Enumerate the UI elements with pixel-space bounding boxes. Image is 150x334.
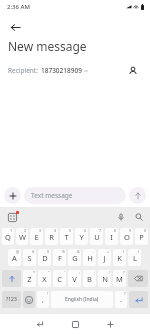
button[interactable]: Home: [64, 314, 86, 334]
staticText: 4: [54, 228, 57, 233]
button[interactable]: #: [23, 249, 36, 266]
staticText: Q: [5, 232, 11, 242]
staticText: ?123: [6, 296, 17, 303]
staticText: V: [72, 274, 77, 284]
staticText: Recipient:: [8, 66, 38, 75]
staticText: New message: [8, 38, 87, 54]
button[interactable]: Text message: [24, 187, 126, 204]
button[interactable]: ": [38, 270, 51, 287]
staticText: 8: [114, 228, 117, 233]
button[interactable]: ': [53, 270, 66, 287]
staticText: 7: [99, 228, 102, 233]
staticText: X: [42, 274, 47, 284]
button[interactable]: 7: [90, 228, 103, 245]
staticText: U: [94, 232, 100, 242]
button[interactable]: &: [68, 249, 81, 266]
staticText: F: [58, 253, 62, 263]
staticText: C: [57, 274, 62, 284]
staticText: H: [87, 253, 93, 263]
staticText: O: [124, 232, 130, 242]
staticText: $: [47, 249, 50, 254]
staticText: ': [64, 270, 65, 275]
button[interactable]: Attach: [4, 187, 21, 204]
staticText: K: [117, 253, 122, 263]
button[interactable]: +: [98, 249, 111, 266]
button[interactable]: Stickers: [5, 210, 19, 224]
button[interactable]: 1: [2, 228, 14, 245]
button[interactable]: Shift: [2, 270, 21, 287]
button[interactable]: Search: [132, 210, 145, 223]
staticText: T: [64, 232, 69, 242]
button[interactable]: 3: [30, 228, 43, 245]
button[interactable]: ): [128, 249, 141, 266]
staticText: 6: [84, 228, 87, 233]
button[interactable]: Enter: [129, 291, 148, 308]
staticText: .: [120, 295, 122, 305]
staticText: -: [93, 249, 95, 254]
staticText: English (India): [65, 296, 99, 303]
staticText: 2: [24, 228, 27, 233]
staticText: W: [19, 232, 26, 242]
staticText: I: [110, 232, 113, 242]
button[interactable]: *: [23, 270, 36, 287]
button[interactable]: @: [8, 249, 21, 266]
staticText: 18730218909: [41, 66, 82, 75]
staticText: :: [79, 270, 80, 275]
button[interactable]: $: [38, 249, 51, 266]
staticText: P: [139, 232, 144, 242]
staticText: !: [109, 270, 110, 275]
staticText: N: [102, 274, 108, 284]
button[interactable]: 4: [45, 228, 58, 245]
button[interactable]: Send: [129, 187, 146, 204]
button[interactable]: Add contact: [124, 62, 142, 80]
staticText: S: [27, 253, 32, 263]
button[interactable]: ?: [113, 270, 126, 287]
staticText: L: [133, 253, 137, 263]
button[interactable]: 9: [120, 228, 133, 245]
staticText: G: [72, 253, 78, 263]
button[interactable]: -: [83, 249, 96, 266]
button[interactable]: 2: [16, 228, 28, 245]
button[interactable]: ;: [83, 270, 96, 287]
button[interactable]: Emoji: [23, 291, 35, 308]
button[interactable]: %: [53, 249, 66, 266]
button[interactable]: 5: [60, 228, 73, 245]
button[interactable]: (: [113, 249, 126, 266]
button[interactable]: ?: [115, 291, 127, 308]
staticText: ;: [94, 270, 95, 275]
staticText: J: [103, 253, 106, 263]
button[interactable]: ?123: [2, 291, 21, 308]
staticText: ,: [42, 295, 44, 305]
button[interactable]: 0: [135, 228, 148, 245]
staticText: R: [49, 232, 54, 242]
staticText: Text message: [31, 191, 73, 200]
button[interactable]: 6: [75, 228, 88, 245]
staticText: E: [34, 232, 39, 242]
button[interactable]: !: [37, 291, 49, 308]
staticText: +: [107, 249, 110, 254]
button[interactable]: Voice input: [114, 210, 127, 223]
staticText: 2:36 AM: [7, 3, 30, 11]
button[interactable]: :: [68, 270, 81, 287]
button[interactable]: 8: [105, 228, 118, 245]
button[interactable]: Back: [5, 17, 25, 37]
staticText: %: [62, 249, 65, 254]
staticText: B: [87, 274, 92, 284]
staticText: ?: [124, 291, 126, 296]
button[interactable]: English (India): [51, 291, 113, 308]
button[interactable]: 18730218909: [41, 66, 88, 75]
staticText: !: [47, 291, 48, 296]
staticText: 1: [10, 228, 13, 233]
button[interactable]: Back: [29, 314, 51, 334]
staticText: Z: [27, 274, 32, 284]
staticText: 3: [39, 228, 42, 233]
staticText: ": [48, 270, 50, 275]
staticText: *: [33, 270, 35, 275]
staticText: ?: [123, 270, 125, 275]
button[interactable]: !: [98, 270, 111, 287]
staticText: A: [12, 253, 17, 263]
staticText: @: [16, 249, 20, 254]
button[interactable]: Recents: [99, 314, 121, 334]
staticText: D: [42, 253, 48, 263]
button[interactable]: Backspace: [128, 270, 148, 287]
